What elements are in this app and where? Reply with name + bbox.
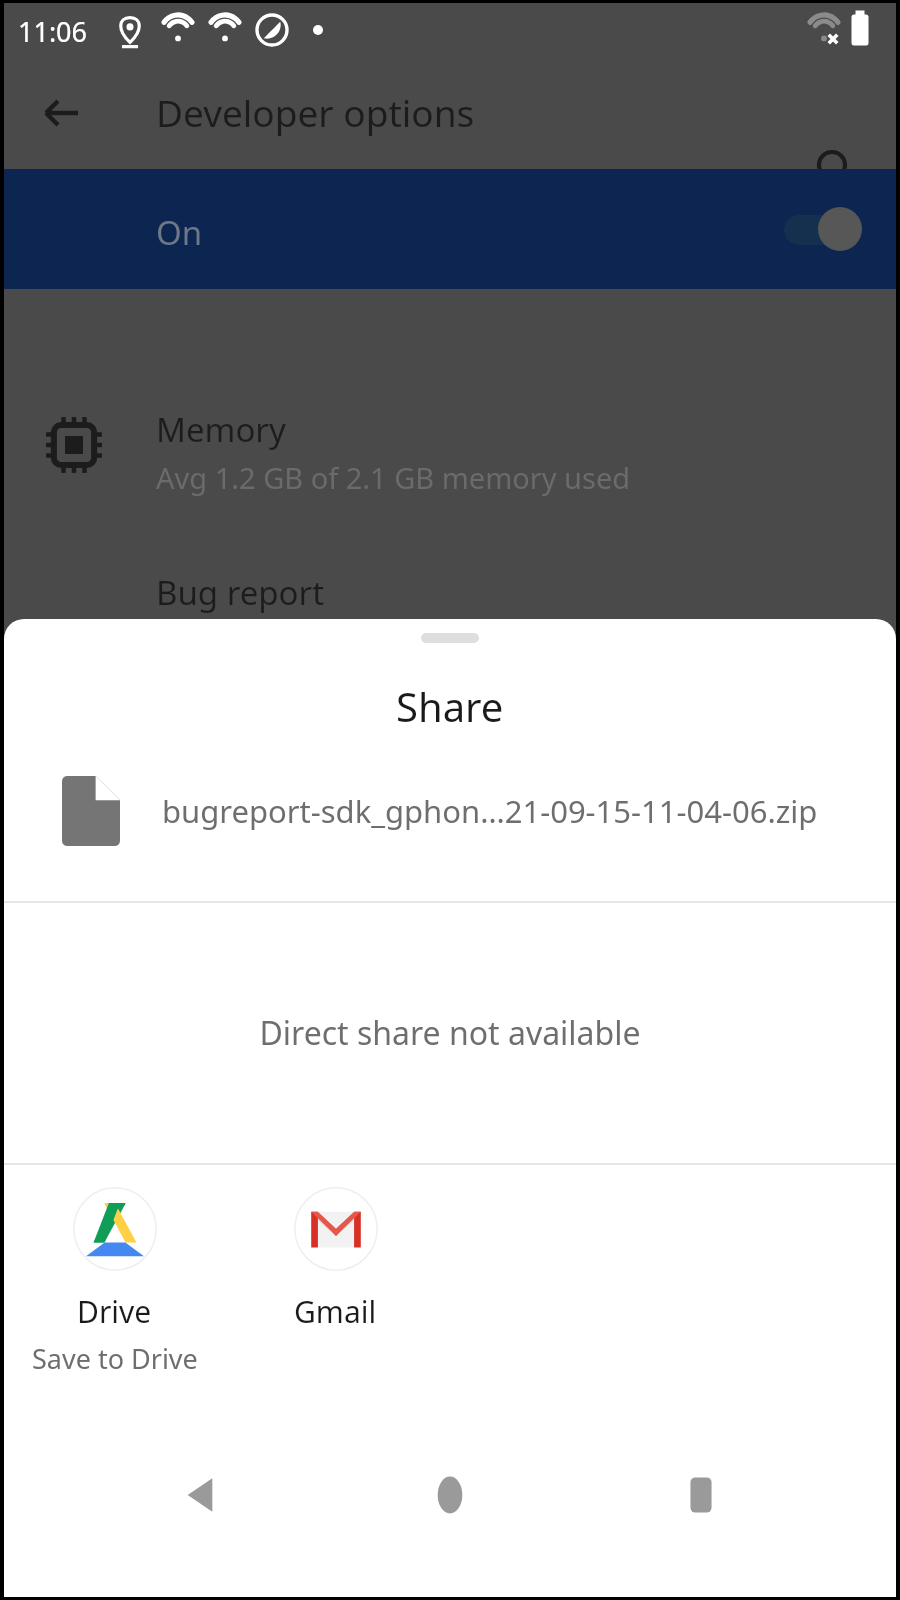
button[interactable]: Back	[145, 1440, 255, 1550]
staticText: bugreport-sdk_gphon…21-09-15-11-04-06.zi…	[162, 790, 818, 832]
staticText: Memory	[156, 407, 286, 452]
staticText: Developer options	[156, 87, 475, 137]
staticText: Drive	[77, 1291, 152, 1332]
button[interactable]: Bug report	[4, 556, 896, 626]
button[interactable]: Drive	[4, 1165, 225, 1393]
button[interactable]: Search	[802, 135, 870, 203]
staticText: Gmail	[294, 1291, 377, 1332]
staticText: On	[156, 210, 203, 255]
staticText: 11:06	[18, 13, 88, 50]
button[interactable]: Memory	[4, 387, 896, 503]
button[interactable]: Home	[395, 1440, 505, 1550]
button[interactable]: Back	[28, 79, 96, 147]
button[interactable]: Gmail	[225, 1165, 446, 1393]
button[interactable]: On	[4, 169, 896, 289]
staticText: Share	[396, 679, 504, 733]
staticText: Direct share not available	[259, 1011, 641, 1055]
staticText: Save to Drive	[32, 1340, 198, 1377]
button[interactable]: Recent apps	[646, 1440, 756, 1550]
staticText: Avg 1.2 GB of 2.1 GB memory used	[156, 458, 631, 497]
staticText: Bug report	[156, 570, 325, 615]
button[interactable]: bugreport-sdk_gphon…21-09-15-11-04-06.zi…	[4, 745, 896, 877]
